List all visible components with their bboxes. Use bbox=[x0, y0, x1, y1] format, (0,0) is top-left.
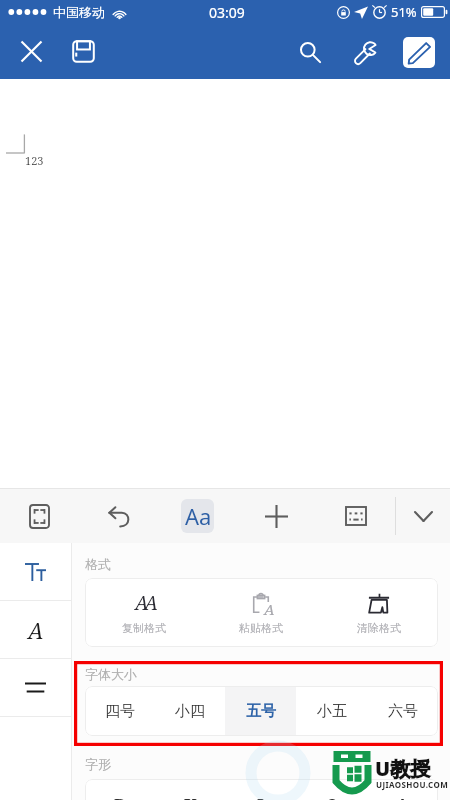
button[interactable]: Close bbox=[10, 30, 53, 73]
staticText: 123 bbox=[25, 153, 44, 168]
button[interactable]: Keyboard bbox=[316, 489, 395, 543]
staticText: 清除格式 bbox=[357, 621, 401, 635]
staticText: U bbox=[184, 793, 197, 800]
button[interactable]: Page view bbox=[0, 489, 79, 543]
staticText: 小四 bbox=[175, 702, 205, 721]
staticText: 复制格式 bbox=[122, 621, 166, 635]
staticText: 四号 bbox=[105, 702, 135, 721]
staticText: 字体大小 bbox=[85, 666, 137, 682]
button[interactable]: Tools bbox=[345, 31, 387, 73]
button[interactable]: 清除格式 bbox=[320, 578, 438, 647]
staticText: B bbox=[114, 793, 126, 800]
button[interactable]: 四号 bbox=[85, 686, 155, 736]
button[interactable]: AA bbox=[85, 578, 202, 647]
button[interactable]: Paragraph bbox=[0, 601, 71, 658]
staticText: A bbox=[28, 615, 44, 645]
button[interactable]: B bbox=[85, 779, 155, 800]
button[interactable]: Search bbox=[289, 31, 331, 73]
staticText: AA bbox=[135, 590, 154, 616]
staticText: I bbox=[257, 793, 264, 800]
button[interactable]: Font bbox=[0, 543, 71, 600]
staticText: 格式 bbox=[85, 556, 111, 572]
staticText: 03:09 bbox=[209, 3, 245, 22]
staticText: Aa bbox=[185, 501, 212, 531]
button[interactable]: Save bbox=[62, 30, 105, 73]
staticText: UJIAOSHOU.COM bbox=[376, 779, 449, 790]
button[interactable]: A bbox=[202, 578, 320, 647]
staticText: A bbox=[264, 599, 275, 619]
button[interactable]: 五号 bbox=[225, 686, 296, 736]
staticText: 中国移动 bbox=[53, 4, 105, 20]
staticText: U教授 bbox=[375, 755, 431, 782]
button[interactable]: U bbox=[155, 779, 225, 800]
button[interactable]: Undo bbox=[79, 489, 158, 543]
staticText: 51% bbox=[391, 3, 417, 21]
button[interactable]: Collapse bbox=[396, 489, 450, 543]
staticText: A bbox=[396, 793, 409, 800]
button[interactable]: 小四 bbox=[155, 686, 225, 736]
staticText: 小五 bbox=[317, 702, 347, 721]
button[interactable]: Insert bbox=[237, 489, 316, 543]
staticText: S bbox=[327, 793, 337, 800]
button[interactable]: 六号 bbox=[367, 686, 438, 736]
staticText: 五号 bbox=[246, 702, 276, 721]
button[interactable]: Edit bbox=[403, 37, 435, 68]
button[interactable]: I bbox=[225, 779, 296, 800]
staticText: 粘贴格式 bbox=[239, 621, 283, 635]
button[interactable]: 小五 bbox=[296, 686, 367, 736]
staticText: 六号 bbox=[388, 702, 418, 721]
button[interactable]: S bbox=[296, 779, 367, 800]
button[interactable]: A bbox=[367, 779, 438, 800]
staticText: 字形 bbox=[85, 756, 111, 772]
button[interactable]: Aa bbox=[158, 489, 237, 543]
button[interactable]: List bbox=[0, 659, 71, 716]
